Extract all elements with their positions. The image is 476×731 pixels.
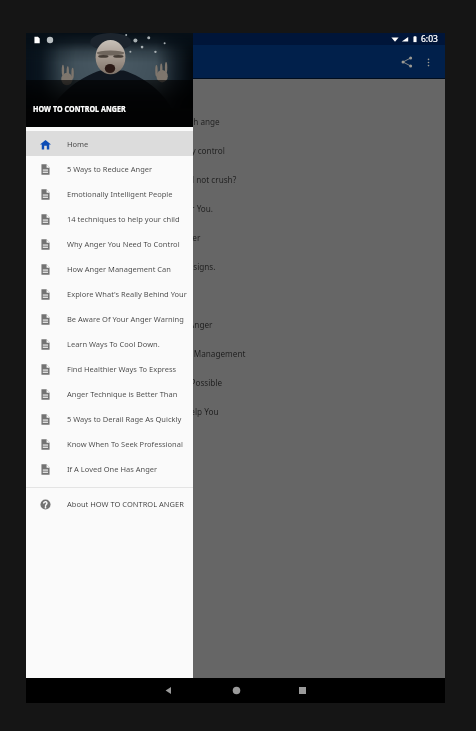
staticText: Should you control your own anger and no…: [42, 174, 237, 185]
staticText: Anger Thermometers Simple Tips: [42, 435, 171, 446]
staticText: Getting Started And How To Handle With a…: [42, 116, 220, 127]
staticText: How Anger Management Can: [67, 264, 171, 274]
staticText: Watch out for your own anger warning sig…: [42, 261, 216, 272]
staticText: Know When To Seek Professional: [67, 439, 183, 449]
staticText: If A Loved One Has Anger: [67, 464, 158, 474]
button[interactable]: If A Loved One Has Anger: [26, 456, 193, 481]
button[interactable]: Things You Really Should Know On Anger: [26, 223, 445, 252]
staticText: HOW TO CONTROL ANGER: [33, 102, 126, 115]
button[interactable]: Watch out for your own anger warning sig…: [26, 252, 445, 281]
staticText: Why Anger You Need To Control: [67, 239, 180, 249]
button[interactable]: Controlling Anger Before It Controls is …: [26, 368, 445, 397]
button[interactable]: Home: [26, 131, 193, 156]
staticText: Be Aware Of Your Anger Warning: [67, 314, 184, 324]
button[interactable]: Share: [396, 48, 417, 76]
button[interactable]: How Anger Management Can: [26, 256, 193, 281]
staticText: Anger Management Techniques Are For You.: [42, 203, 214, 214]
staticText: Things You Really Should Know On Anger: [42, 232, 201, 243]
button[interactable]: Find Healthier Ways To Express: [26, 356, 193, 381]
button[interactable]: Learn Ways To Cool Down.: [26, 331, 193, 356]
staticText: Stay Calm: [42, 290, 80, 301]
staticText: What exactly do we mean by the Anger Man…: [42, 348, 246, 359]
button[interactable]: Know When To Seek Professional: [26, 431, 193, 456]
button[interactable]: Be Aware Of Your Anger Warning: [26, 306, 193, 331]
button[interactable]: Should you control your own anger and no…: [26, 165, 445, 194]
staticText: The Simple Best Ways To Control Your Ang…: [42, 319, 213, 330]
button[interactable]: Back: [158, 678, 178, 703]
button[interactable]: 14 techniques to help your child: [26, 206, 193, 231]
button[interactable]: Home: [226, 678, 246, 703]
button[interactable]: Anger Thermometers Simple Tips: [26, 426, 445, 455]
button[interactable]: More options: [417, 48, 439, 76]
staticText: Emotionally Intelligent People: [67, 189, 173, 199]
staticText: Find Healthier Ways To Express: [67, 364, 177, 374]
button[interactable]: 5 Ways to Derail Rage As Quickly: [26, 406, 193, 431]
button[interactable]: 5 Ways to Reduce Anger: [26, 156, 193, 181]
staticText: Explore What's Really Behind Your: [67, 289, 187, 299]
staticText: Controlling Anger Before It Controls is …: [42, 377, 223, 388]
staticText: 5 Ways to Derail Rage As Quickly: [67, 414, 182, 424]
staticText: About HOW TO CONTROL ANGER: [67, 499, 184, 509]
button[interactable]: About HOW TO CONTROL ANGER: [26, 491, 193, 516]
staticText: Home: [67, 139, 89, 149]
staticText: 14 techniques to help your child: [67, 214, 180, 224]
button[interactable]: Why Anger You Need To Control: [26, 231, 193, 256]
staticText: Learn Ways To Cool Down.: [67, 339, 160, 349]
button[interactable]: The Simple Best Ways To Control Your Ang…: [26, 310, 445, 339]
button[interactable]: Anger Technique is Better Than: [26, 381, 193, 406]
staticText: Anger Technique is Better Than: [67, 389, 178, 399]
staticText: 5 Ways to Reduce Anger: [67, 164, 153, 174]
button[interactable]: Explore What's Really Behind Your: [26, 281, 193, 306]
button[interactable]: How do you know that you have already co…: [26, 136, 445, 165]
button[interactable]: Stay Calm: [26, 281, 445, 310]
button[interactable]: Recents: [292, 678, 312, 703]
button[interactable]: Emotionally Intelligent People: [26, 181, 193, 206]
button[interactable]: Anger Management Techniques Are For You.: [26, 194, 445, 223]
button[interactable]: Getting Started And How To Handle With a…: [26, 107, 445, 136]
button[interactable]: Simple Techniques That Could Really Help…: [26, 397, 445, 426]
staticText: How do you know that you have already co…: [42, 145, 225, 156]
staticText: Simple Techniques That Could Really Help…: [42, 406, 219, 417]
button[interactable]: What exactly do we mean by the Anger Man…: [26, 339, 445, 368]
staticText: 6:03: [421, 33, 438, 45]
